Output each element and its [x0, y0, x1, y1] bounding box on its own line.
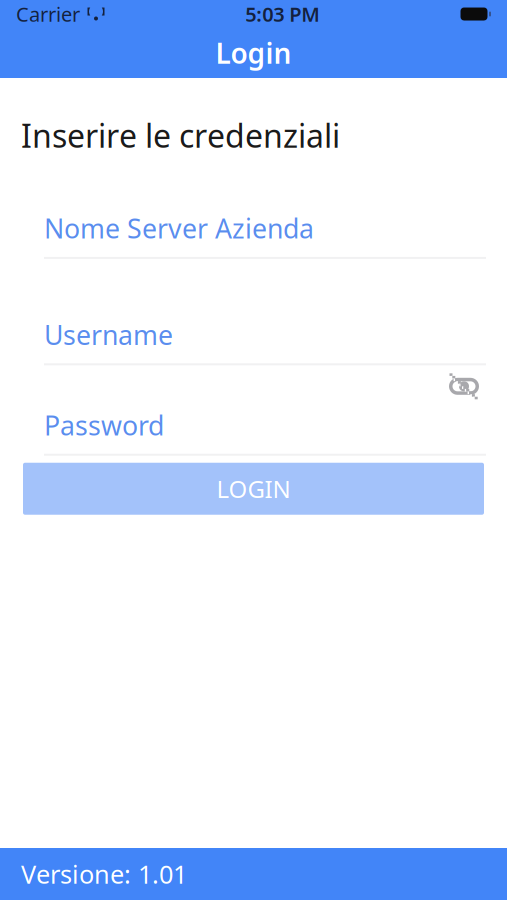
button[interactable]: Password	[44, 407, 486, 456]
staticText: 5:03 PM	[245, 1, 320, 27]
staticText: Username	[44, 317, 173, 352]
staticText: Carrier	[16, 1, 80, 27]
button[interactable]: Mostra password	[442, 369, 486, 403]
button[interactable]: LOGIN	[23, 463, 484, 515]
staticText: Nome Server Azienda	[44, 210, 314, 246]
button[interactable]: Nome Server Azienda	[44, 210, 486, 259]
staticText: Password	[44, 407, 164, 443]
staticText: LOGIN	[216, 473, 290, 505]
button[interactable]: Username	[44, 317, 486, 365]
staticText: Versione: 1.01	[21, 857, 187, 891]
staticText: Inserire le credenziali	[21, 114, 340, 156]
staticText: Login	[215, 34, 291, 72]
